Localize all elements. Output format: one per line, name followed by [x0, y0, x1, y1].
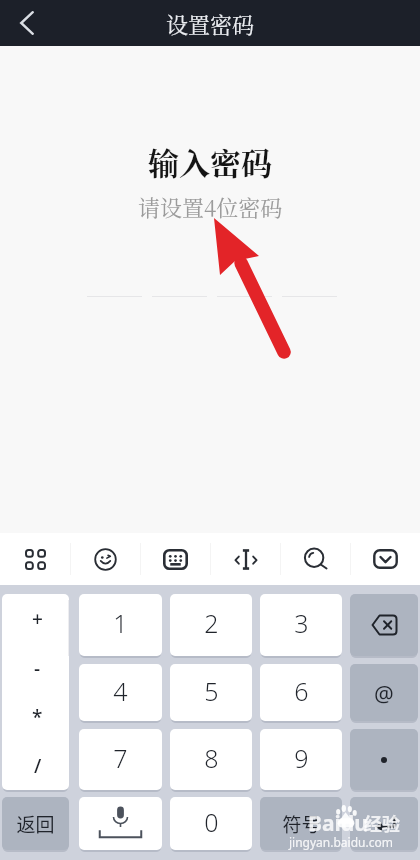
staticText: 设置密码 — [166, 8, 255, 40]
button[interactable]: 3 — [260, 594, 342, 656]
button[interactable]: Backspace — [350, 594, 418, 656]
staticText: 请设置4位密码 — [138, 191, 283, 223]
button[interactable]: 5 — [170, 664, 252, 721]
staticText: 8 — [204, 741, 219, 775]
staticText: 2 — [204, 606, 219, 640]
button[interactable]: Emoji — [71, 533, 140, 585]
button[interactable]: Search — [281, 533, 350, 585]
button[interactable]: @ — [350, 664, 418, 721]
staticText: 返回 — [16, 810, 55, 838]
button[interactable]: 0 — [170, 797, 252, 850]
staticText: 5 — [204, 674, 219, 708]
button[interactable]: 返回 — [2, 797, 69, 850]
staticText: 0 — [204, 805, 219, 839]
button[interactable]: 4 — [79, 664, 162, 721]
button[interactable]: Apps — [0, 533, 70, 585]
staticText: 3 — [294, 606, 309, 640]
button[interactable]: 2 — [170, 594, 252, 656]
staticText: 输入密码 — [148, 139, 272, 184]
staticText: 6 — [294, 674, 309, 708]
staticText: jingyan.baidu.com — [289, 834, 393, 850]
button[interactable]: 1 — [79, 594, 162, 656]
button[interactable]: + — [2, 594, 69, 790]
button[interactable]: 8 — [170, 729, 252, 790]
button[interactable]: Back — [0, 0, 54, 46]
button[interactable]: 9 — [260, 729, 342, 790]
staticText: du — [341, 809, 368, 838]
staticText: 7 — [113, 741, 128, 775]
staticText: 9 — [294, 741, 309, 775]
button[interactable]: Switch keyboard — [141, 533, 210, 585]
button[interactable]: 符号 — [260, 797, 342, 850]
staticText: 符号 — [282, 810, 321, 838]
staticText: / — [34, 753, 42, 779]
button[interactable]: Enter — [350, 797, 418, 850]
staticText: + — [32, 606, 43, 632]
staticText: 1 — [113, 606, 128, 640]
button[interactable]: 7 — [79, 729, 162, 790]
button[interactable]: 6 — [260, 664, 342, 721]
staticText: * — [32, 704, 43, 730]
staticText: @ — [374, 678, 394, 708]
staticText: 4 — [113, 674, 128, 708]
staticText: - — [34, 655, 41, 681]
button[interactable]: Dot — [350, 729, 418, 790]
staticText: 经验 — [364, 810, 400, 836]
button[interactable]: Space — [79, 797, 162, 850]
button[interactable]: Move cursor — [211, 533, 280, 585]
staticText: Bai — [308, 809, 341, 838]
button[interactable]: Hide keyboard — [351, 533, 420, 585]
